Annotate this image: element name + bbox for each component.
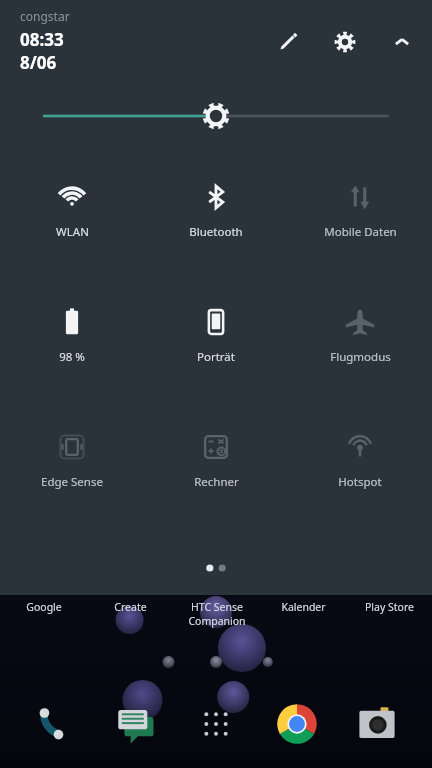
staticText: Bluetooth [189, 224, 243, 240]
staticText: 98 % [59, 349, 85, 365]
button[interactable]: Play Store [346, 600, 432, 614]
staticText: Google [26, 600, 62, 614]
staticText: Rechner [194, 474, 239, 490]
button[interactable]: Flugmodus [288, 301, 432, 383]
button[interactable]: WLAN [0, 176, 144, 258]
button[interactable]: Collapse [384, 24, 420, 60]
staticText: Hotspot [338, 474, 382, 490]
staticText: 08:33 [20, 28, 64, 51]
button[interactable]: Google [0, 600, 87, 614]
button[interactable]: All apps [190, 698, 242, 750]
button[interactable]: Phone [29, 698, 81, 750]
staticText: Create [114, 600, 147, 614]
button[interactable]: Settings [327, 24, 363, 60]
staticText: congstar [20, 8, 70, 24]
button[interactable]: Porträt [144, 301, 288, 383]
button[interactable]: Edit [270, 24, 306, 60]
staticText: HTC Sense Companion [188, 600, 246, 628]
staticText: Porträt [197, 349, 235, 365]
staticText: WLAN [56, 224, 89, 240]
button[interactable]: Chrome [271, 698, 323, 750]
button[interactable]: Hotspot [288, 426, 432, 508]
button[interactable]: Brightness [0, 88, 432, 144]
staticText: Kalender [281, 600, 326, 614]
button[interactable]: Edge Sense [0, 426, 144, 508]
button[interactable]: Kalender [260, 600, 346, 614]
button[interactable]: Mobile Daten [288, 176, 432, 258]
staticText: Flugmodus [330, 349, 391, 365]
button[interactable]: 98 % [0, 301, 144, 383]
button[interactable]: HTC Sense Companion [174, 600, 260, 628]
button[interactable]: Rechner [144, 426, 288, 508]
staticText: Play Store [365, 600, 414, 614]
button[interactable]: Camera [351, 698, 403, 750]
staticText: Mobile Daten [324, 224, 397, 240]
staticText: 8/06 [20, 51, 57, 74]
button[interactable]: Messages [109, 698, 161, 750]
button[interactable]: Bluetooth [144, 176, 288, 258]
staticText: Edge Sense [41, 474, 103, 490]
button[interactable]: Create [87, 600, 174, 614]
